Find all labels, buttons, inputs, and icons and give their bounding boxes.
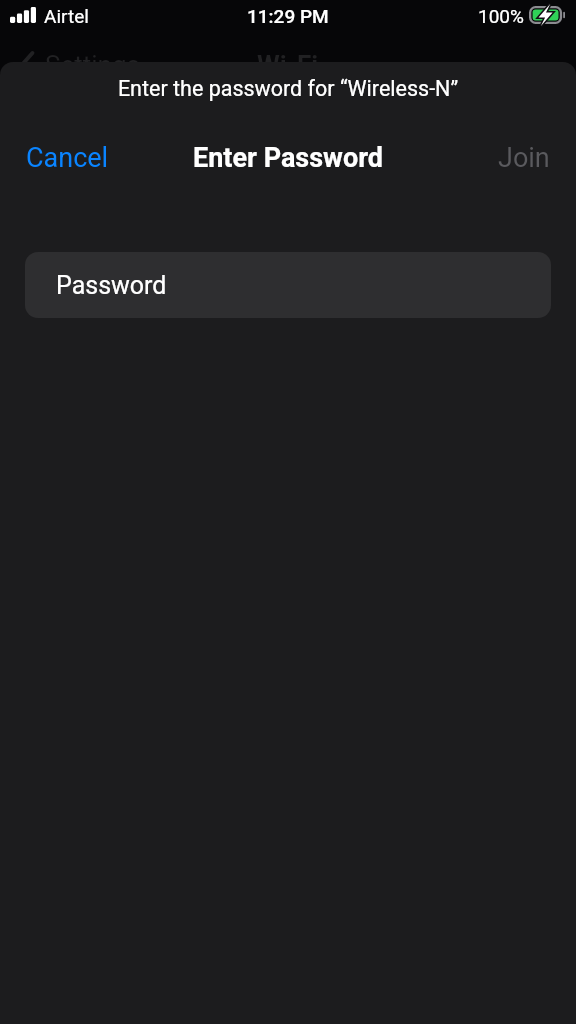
other: Back [21,53,34,76]
button[interactable]: Join [484,134,564,182]
other: Battery 100 percent charging [529,6,565,24]
staticText: 100% [478,5,524,27]
button[interactable]: Password [25,252,551,318]
staticText: 11:29 PM [247,5,329,27]
staticText: Cancel [26,142,109,174]
staticText: Join [498,142,550,174]
other: Cellular signal strength [10,7,36,23]
staticText: Airtel [44,5,89,27]
staticText: Password [56,271,167,300]
button[interactable]: Cancel [12,134,123,182]
staticText: Enter Password [193,142,383,174]
staticText: Wi-Fi [257,50,319,80]
staticText: Settings [45,50,140,80]
staticText: Enter the password for “Wireless-N” [0,76,576,101]
